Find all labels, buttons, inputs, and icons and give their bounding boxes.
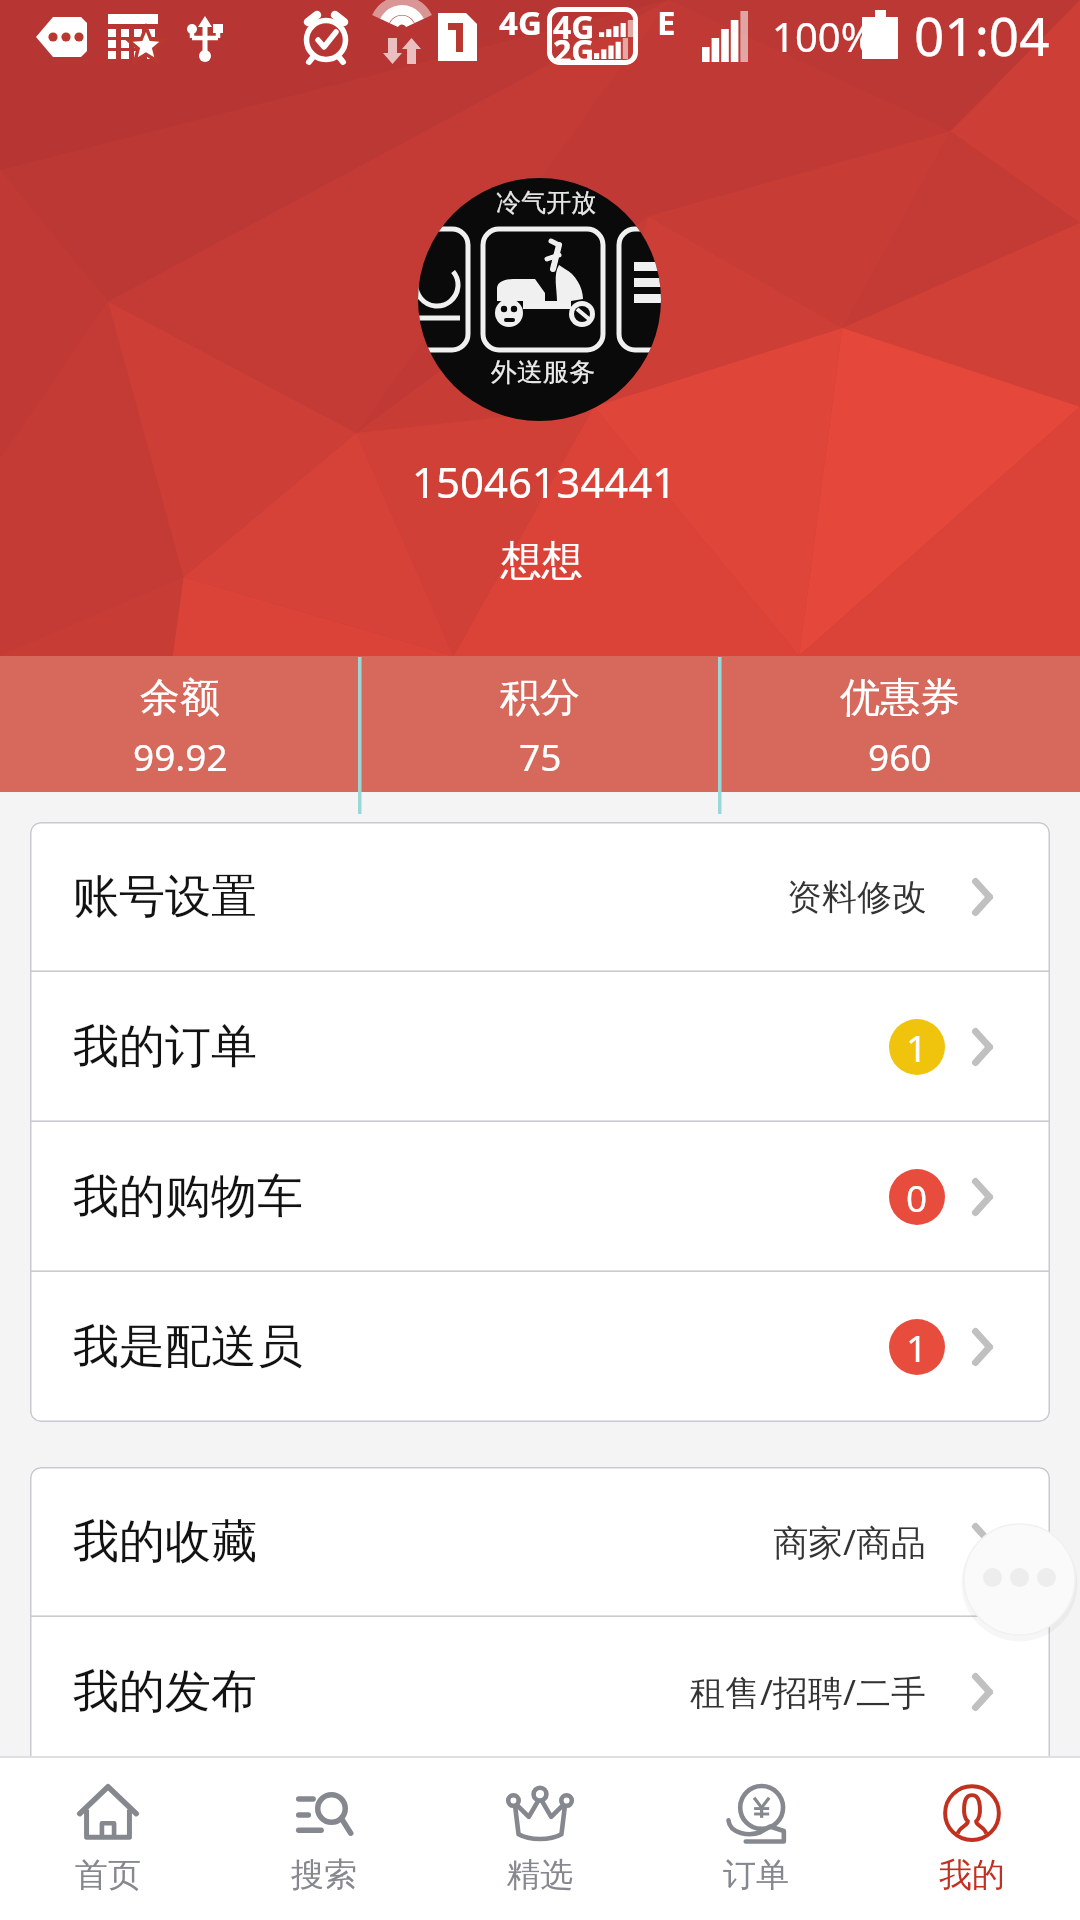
staticText: 首页 (75, 1854, 141, 1896)
staticText: 优惠券 (840, 672, 960, 722)
staticText: 15046134441 (412, 453, 677, 510)
staticText: 商家/商品 (773, 1518, 927, 1566)
staticText: 1 (906, 1322, 928, 1372)
button[interactable]: 搜索 (216, 1758, 432, 1896)
button[interactable]: 我的购物车 (30, 1122, 1050, 1272)
button[interactable]: More options (955, 1515, 1080, 1644)
staticText: 想想 (501, 536, 583, 588)
button[interactable]: 我的订单 (30, 972, 1050, 1122)
staticText: 冷气开放 (496, 187, 596, 218)
staticText: 我的收藏 (73, 1513, 257, 1571)
staticText: 1 (906, 1022, 928, 1072)
button[interactable]: 账号设置 (30, 822, 1050, 972)
staticText: 账号设置 (73, 868, 257, 926)
staticText: 960 (868, 731, 932, 781)
staticText: 100% (772, 9, 874, 63)
staticText: 4G (553, 7, 595, 49)
staticText: 我的购物车 (73, 1168, 303, 1226)
staticText: 订单 (723, 1854, 789, 1896)
staticText: 我的发布 (73, 1663, 257, 1721)
staticText: 4G (499, 0, 542, 45)
staticText: 01:04 (914, 0, 1050, 71)
button[interactable]: Profile photo (418, 178, 661, 421)
staticText: 我的地址 (73, 1813, 257, 1871)
button[interactable]: 余额 (0, 656, 360, 781)
button[interactable]: 积分 (360, 656, 720, 781)
staticText: 75 (519, 731, 562, 781)
button[interactable]: 订单 (648, 1758, 864, 1896)
staticText: 搜索 (291, 1854, 357, 1896)
button[interactable]: 我的 (864, 1758, 1080, 1896)
button[interactable]: 我的发布 (30, 1617, 1050, 1767)
staticText: 资料修改 (787, 875, 927, 919)
staticText: 我是配送员 (73, 1318, 303, 1376)
staticText: 积分 (500, 672, 580, 722)
button[interactable]: 优惠券 (720, 656, 1080, 781)
staticText: 余额 (140, 672, 220, 722)
staticText: 我的订单 (73, 1018, 257, 1076)
staticText: 我的 (939, 1854, 1005, 1896)
button[interactable]: 我的收藏 (30, 1467, 1050, 1617)
staticText: 租售/招聘/二手 (690, 1668, 927, 1716)
button[interactable]: 我是配送员 (30, 1272, 1050, 1422)
staticText: 99.92 (133, 731, 228, 781)
staticText: 外送服务 (491, 356, 595, 389)
staticText: 精选 (507, 1854, 573, 1896)
staticText: 2G (553, 29, 595, 65)
button[interactable]: 首页 (0, 1758, 216, 1896)
button[interactable]: 我的地址 (30, 1767, 1050, 1917)
staticText: 0 (906, 1172, 928, 1222)
button[interactable]: 精选 (432, 1758, 648, 1896)
staticText: E (657, 0, 676, 45)
